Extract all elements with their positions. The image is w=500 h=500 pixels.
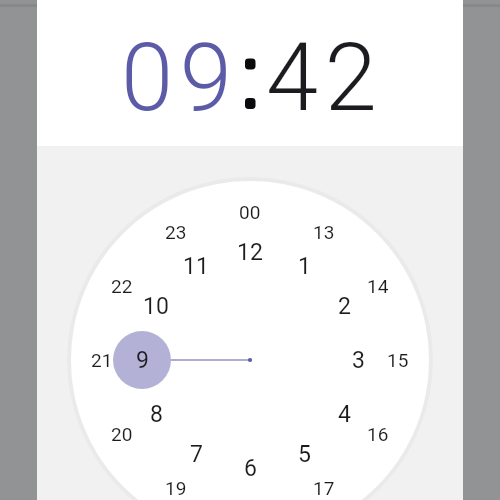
staticText: 21 — [91, 349, 113, 371]
staticText: 1 — [298, 253, 311, 280]
staticText: 3 — [352, 347, 365, 374]
button[interactable]: 2 — [322, 284, 366, 328]
button[interactable]: 17 — [302, 466, 346, 500]
button[interactable]: 20 — [100, 412, 144, 456]
staticText: 5 — [298, 441, 311, 468]
staticText: 00 — [239, 201, 261, 223]
button[interactable]: 19 — [154, 466, 198, 500]
button[interactable]: 4 — [322, 392, 366, 436]
staticText: 15 — [387, 349, 409, 371]
button[interactable]: 21 — [80, 338, 124, 382]
staticText: 14 — [367, 275, 389, 297]
button[interactable]: 14 — [356, 264, 400, 308]
staticText: 19 — [165, 477, 187, 499]
staticText: 7 — [190, 441, 203, 468]
staticText: 11 — [183, 253, 209, 280]
staticText: 12 — [237, 239, 263, 266]
staticText: 4 — [338, 401, 351, 428]
button[interactable]: 00 — [228, 190, 272, 234]
staticText: 9 — [136, 347, 149, 374]
staticText: 6 — [244, 455, 257, 482]
staticText: 23 — [165, 221, 187, 243]
button[interactable] — [71, 181, 429, 500]
button[interactable]: 23 — [154, 210, 198, 254]
button[interactable]: 8 — [134, 392, 178, 436]
button[interactable]: 10 — [134, 284, 178, 328]
button[interactable]: 22 — [100, 264, 144, 308]
button[interactable]: 5 — [282, 432, 326, 476]
button[interactable]: 11 — [174, 244, 218, 288]
button[interactable]: 42 — [266, 23, 384, 133]
staticText: 22 — [111, 275, 133, 297]
button[interactable]: 15 — [376, 338, 420, 382]
staticText: 8 — [150, 401, 163, 428]
button[interactable]: 1 — [282, 244, 326, 288]
button[interactable]: 09 — [121, 23, 239, 133]
button[interactable]: 3 — [336, 338, 380, 382]
button[interactable]: 13 — [302, 210, 346, 254]
button[interactable]: 12 — [228, 230, 272, 274]
button[interactable]: 16 — [356, 412, 400, 456]
staticText: 13 — [313, 221, 335, 243]
staticText: 17 — [313, 477, 335, 499]
staticText: 20 — [111, 423, 133, 445]
button[interactable]: 9 — [120, 338, 164, 382]
button[interactable]: 7 — [174, 432, 218, 476]
staticText: 2 — [338, 293, 351, 320]
button[interactable]: 6 — [228, 446, 272, 490]
staticText: 16 — [367, 423, 389, 445]
staticText: 10 — [143, 293, 169, 320]
